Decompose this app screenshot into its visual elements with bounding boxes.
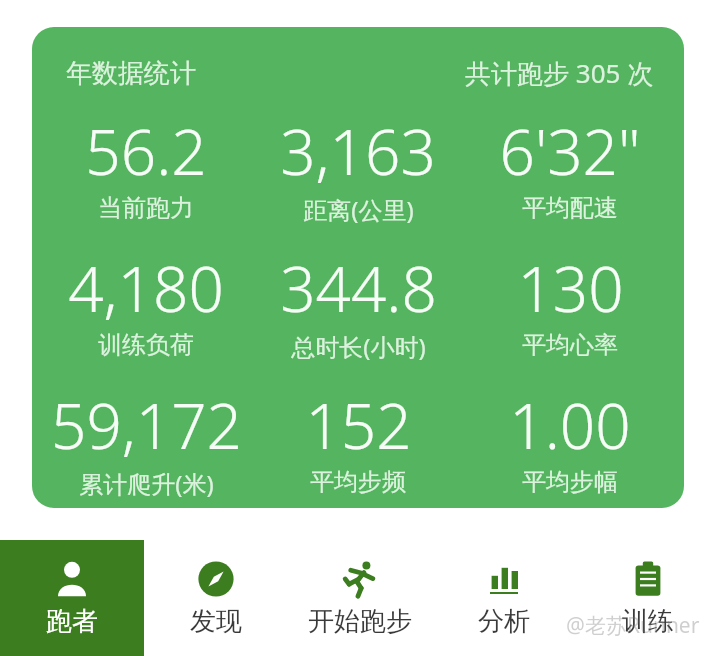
button[interactable]: 4,180: [40, 246, 252, 360]
staticText: @老苏Runner: [566, 611, 700, 640]
staticText: 1.00: [509, 383, 631, 467]
staticText: 152: [305, 383, 412, 467]
staticText: 344.8: [280, 246, 437, 330]
button[interactable]: 开始跑步: [288, 540, 432, 656]
staticText: 发现: [190, 605, 242, 638]
button[interactable]: 发现: [144, 540, 288, 656]
staticText: 59,172: [51, 383, 242, 467]
button[interactable]: 年数据统计: [32, 27, 684, 508]
staticText: 4,180: [68, 246, 224, 330]
staticText: 6'32": [499, 109, 641, 193]
button[interactable]: 344.8: [252, 246, 464, 363]
staticText: 平均步频: [310, 467, 406, 497]
button[interactable]: 152: [252, 383, 464, 497]
staticText: 年数据统计: [66, 57, 196, 90]
staticText: 训练负荷: [98, 330, 194, 360]
button[interactable]: 6'32": [464, 109, 676, 223]
staticText: 分析: [478, 605, 530, 638]
staticText: 训练: [622, 605, 674, 638]
button[interactable]: 分析: [432, 540, 576, 656]
staticText: 共计跑步 305 次: [465, 55, 654, 91]
staticText: 平均步幅: [522, 467, 618, 497]
staticText: 3,163: [280, 109, 436, 193]
button[interactable]: 59,172: [40, 383, 252, 500]
staticText: 距离(公里): [303, 193, 414, 226]
staticText: 累计爬升(米): [79, 467, 214, 500]
staticText: 开始跑步: [308, 605, 412, 638]
staticText: 56.2: [85, 109, 207, 193]
staticText: 130: [517, 246, 624, 330]
staticText: 平均心率: [522, 330, 618, 360]
staticText: 总时长(小时): [291, 330, 426, 363]
button[interactable]: 跑者: [0, 540, 144, 656]
staticText: 跑者: [46, 605, 98, 638]
button[interactable]: 56.2: [40, 109, 252, 223]
button[interactable]: 1.00: [464, 383, 676, 497]
staticText: 平均配速: [522, 193, 618, 223]
button[interactable]: 训练: [576, 540, 720, 656]
button[interactable]: 3,163: [252, 109, 464, 226]
staticText: 当前跑力: [98, 193, 194, 223]
button[interactable]: 130: [464, 246, 676, 360]
